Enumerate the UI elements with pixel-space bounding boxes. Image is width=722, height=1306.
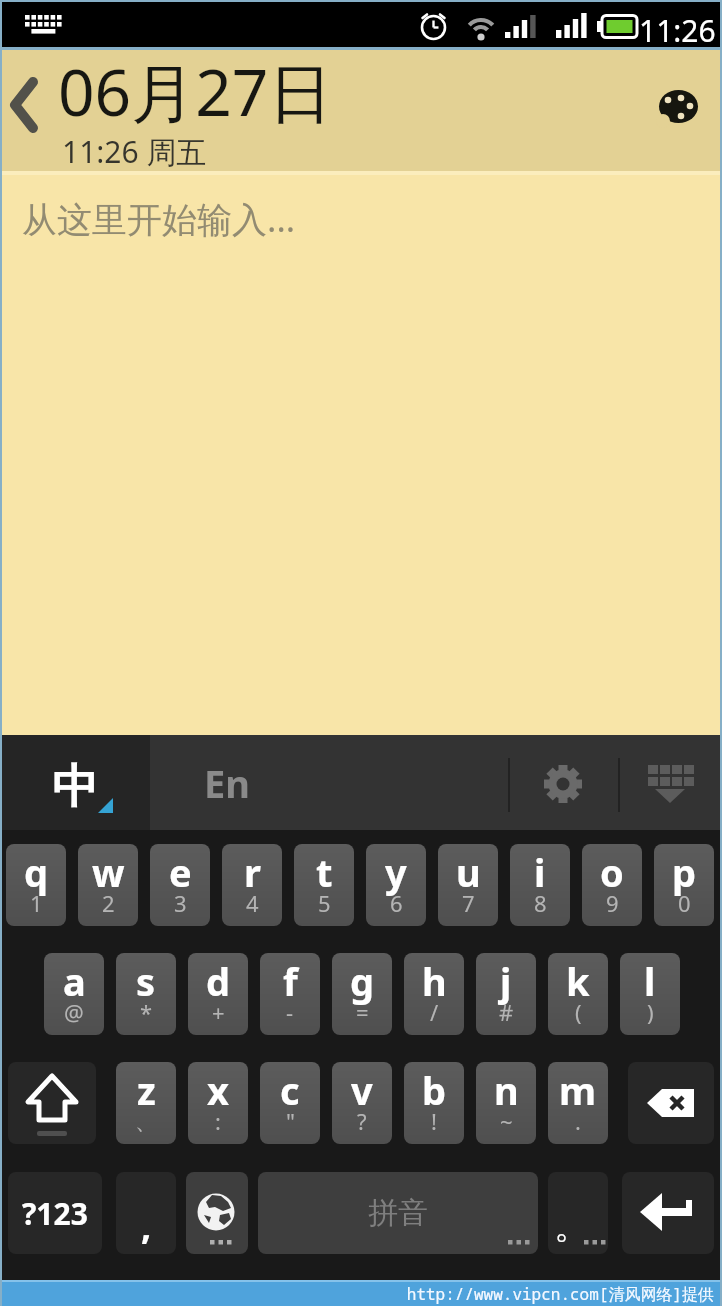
staticText: 5 bbox=[318, 888, 331, 918]
staticText: = bbox=[356, 997, 369, 1027]
button[interactable] bbox=[186, 1172, 248, 1254]
staticText: 9 bbox=[606, 888, 619, 918]
button[interactable]: i bbox=[510, 844, 570, 926]
staticText: http://www.vipcn.com[清风网络]提供 bbox=[300, 1283, 714, 1306]
button[interactable]: s bbox=[116, 953, 176, 1035]
staticText: + bbox=[212, 997, 225, 1027]
staticText: ? bbox=[357, 1106, 367, 1136]
staticText: h bbox=[422, 955, 447, 1007]
button[interactable]: y bbox=[366, 844, 426, 926]
button[interactable]: b bbox=[404, 1062, 464, 1144]
button[interactable]: v bbox=[332, 1062, 392, 1144]
staticText: n bbox=[494, 1064, 519, 1116]
staticText: 4 bbox=[246, 888, 259, 918]
staticText: f bbox=[283, 955, 298, 1007]
staticText: r bbox=[244, 846, 261, 898]
staticText: - bbox=[286, 997, 294, 1027]
staticText: k bbox=[566, 955, 590, 1007]
button[interactable]: l bbox=[620, 953, 680, 1035]
staticText: , bbox=[141, 1201, 152, 1250]
staticText: ) bbox=[647, 997, 654, 1027]
button[interactable]: q bbox=[6, 844, 66, 926]
button[interactable]: p bbox=[654, 844, 714, 926]
button[interactable] bbox=[642, 757, 700, 811]
staticText: 6 bbox=[390, 888, 403, 918]
staticText: ( bbox=[575, 997, 582, 1027]
staticText: o bbox=[600, 846, 624, 898]
button[interactable]: u bbox=[438, 844, 498, 926]
staticText: : bbox=[215, 1106, 221, 1136]
staticText: 。 bbox=[554, 1203, 590, 1248]
staticText: s bbox=[136, 955, 156, 1007]
button[interactable]: t bbox=[294, 844, 354, 926]
button[interactable] bbox=[628, 1062, 714, 1144]
staticText: " bbox=[286, 1106, 295, 1136]
button[interactable]: w bbox=[78, 844, 138, 926]
staticText: 06月27日 bbox=[58, 48, 518, 150]
button[interactable]: d bbox=[188, 953, 248, 1035]
button[interactable] bbox=[0, 60, 58, 160]
staticText: d bbox=[206, 955, 231, 1007]
staticText: c bbox=[280, 1064, 300, 1116]
staticText: e bbox=[169, 846, 192, 898]
staticText: u bbox=[456, 846, 481, 898]
staticText: En bbox=[204, 757, 250, 809]
staticText: w bbox=[92, 846, 125, 898]
button[interactable]: h bbox=[404, 953, 464, 1035]
button[interactable]: z bbox=[116, 1062, 176, 1144]
staticText: a bbox=[63, 955, 86, 1007]
staticText: 2 bbox=[102, 888, 115, 918]
button[interactable]: 中 bbox=[0, 735, 150, 830]
button[interactable]: a bbox=[44, 953, 104, 1035]
button[interactable] bbox=[536, 757, 590, 811]
staticText: 11:26 周五 bbox=[62, 131, 462, 179]
staticText: . bbox=[575, 1106, 581, 1136]
button[interactable]: , bbox=[116, 1172, 176, 1254]
staticText: t bbox=[316, 846, 333, 898]
staticText: ! bbox=[431, 1106, 437, 1136]
staticText: 1 bbox=[30, 888, 43, 918]
button[interactable]: ?123 bbox=[8, 1172, 102, 1254]
staticText: 11:26 bbox=[639, 10, 722, 58]
button[interactable] bbox=[646, 80, 712, 140]
staticText: l bbox=[644, 955, 656, 1007]
staticText: @ bbox=[64, 997, 84, 1027]
button[interactable]: x bbox=[188, 1062, 248, 1144]
staticText: p bbox=[672, 846, 697, 898]
staticText: 0 bbox=[678, 888, 691, 918]
staticText: g bbox=[350, 955, 375, 1007]
button[interactable]: n bbox=[476, 1062, 536, 1144]
staticText: 8 bbox=[534, 888, 547, 918]
button[interactable]: f bbox=[260, 953, 320, 1035]
button[interactable]: c bbox=[260, 1062, 320, 1144]
button[interactable]: e bbox=[150, 844, 210, 926]
staticText: q bbox=[24, 846, 49, 898]
staticText: i bbox=[534, 846, 546, 898]
staticText: 3 bbox=[174, 888, 187, 918]
button[interactable]: r bbox=[222, 844, 282, 926]
staticText: 、 bbox=[135, 1108, 157, 1136]
staticText: 7 bbox=[462, 888, 475, 918]
staticText: * bbox=[140, 997, 153, 1027]
staticText: ~ bbox=[500, 1106, 513, 1136]
staticText: y bbox=[385, 846, 407, 898]
button[interactable]: g bbox=[332, 953, 392, 1035]
button[interactable]: 。 bbox=[548, 1172, 608, 1254]
staticText: z bbox=[137, 1064, 156, 1116]
staticText: 从这里开始输入... bbox=[22, 195, 422, 251]
button[interactable] bbox=[8, 1062, 96, 1144]
button[interactable]: En bbox=[160, 735, 294, 830]
button[interactable] bbox=[622, 1172, 714, 1254]
staticText: x bbox=[207, 1064, 229, 1116]
button[interactable]: k bbox=[548, 953, 608, 1035]
button[interactable]: o bbox=[582, 844, 642, 926]
staticText: 中 bbox=[52, 758, 98, 816]
staticText: / bbox=[430, 997, 439, 1027]
button[interactable]: j bbox=[476, 953, 536, 1035]
staticText: b bbox=[422, 1064, 447, 1116]
staticText: # bbox=[499, 997, 514, 1027]
button[interactable]: m bbox=[548, 1062, 608, 1144]
staticText: 拼音 bbox=[368, 1194, 428, 1232]
button[interactable]: 拼音 bbox=[258, 1172, 538, 1254]
staticText: m bbox=[559, 1064, 597, 1116]
